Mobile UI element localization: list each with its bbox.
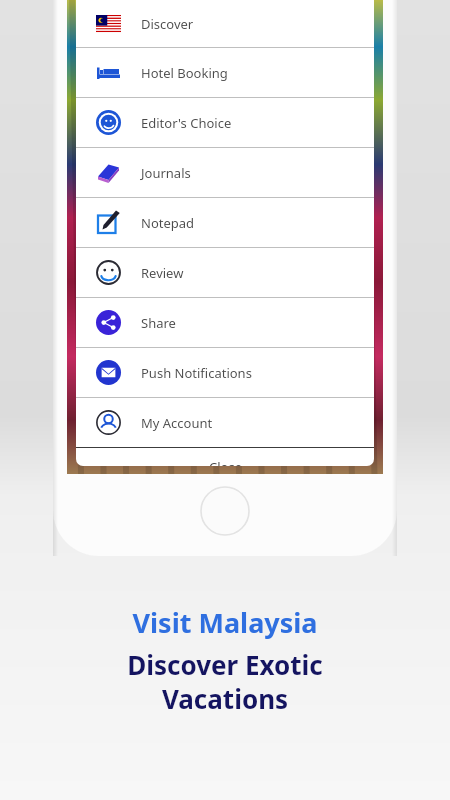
button[interactable]: Journals bbox=[76, 148, 374, 198]
staticText: Discover bbox=[141, 15, 194, 33]
button[interactable]: Review bbox=[76, 248, 374, 298]
button[interactable]: Notepad bbox=[76, 198, 374, 248]
staticText: Notepad bbox=[141, 214, 195, 232]
button[interactable]: Share bbox=[76, 298, 374, 348]
staticText: Journals bbox=[141, 164, 191, 182]
staticText: Share bbox=[141, 314, 176, 332]
staticText: Close bbox=[209, 458, 242, 466]
button[interactable]: Push Notifications bbox=[76, 348, 374, 398]
button[interactable]: Editor's Choice bbox=[76, 98, 374, 148]
button[interactable]: Discover bbox=[76, 0, 374, 48]
button[interactable]: Close bbox=[76, 448, 374, 466]
staticText: Hotel Booking bbox=[141, 64, 228, 82]
staticText: Push Notifications bbox=[141, 364, 252, 382]
staticText: My Account bbox=[141, 414, 213, 432]
button[interactable]: Hotel Booking bbox=[76, 48, 374, 98]
staticText: Review bbox=[141, 264, 184, 282]
staticText: Visit Malaysia bbox=[132, 604, 318, 641]
button[interactable]: My Account bbox=[76, 398, 374, 448]
staticText: Editor's Choice bbox=[141, 114, 232, 132]
staticText: Discover Exotic Vacations bbox=[127, 647, 323, 716]
